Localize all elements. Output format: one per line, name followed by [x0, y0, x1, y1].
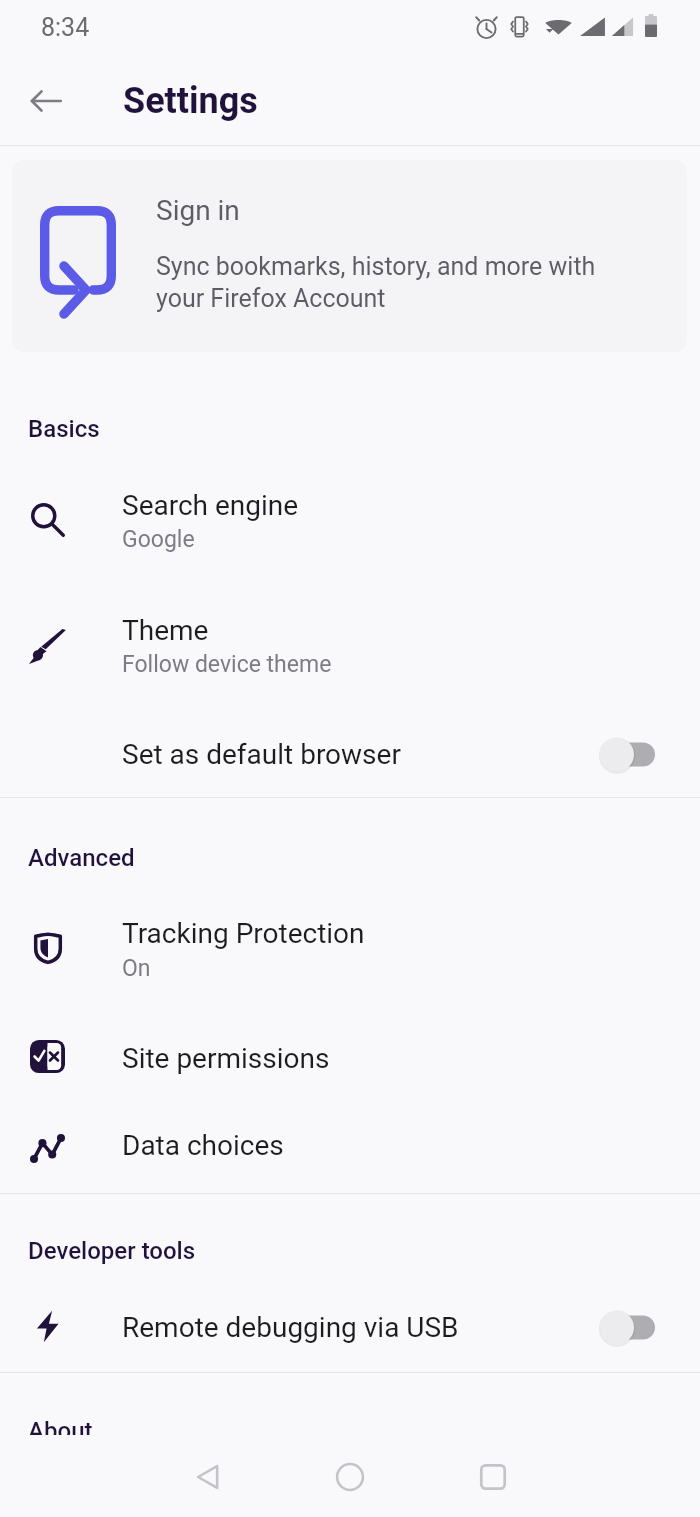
- staticText: Sync bookmarks, history, and more with y…: [156, 252, 596, 313]
- staticText: Settings: [123, 80, 258, 122]
- button[interactable]: Search engine: [0, 489, 700, 553]
- staticText: Follow device theme: [122, 651, 332, 678]
- button[interactable]: Data choices: [0, 1129, 700, 1162]
- staticText: Basics: [28, 415, 100, 443]
- button[interactable]: Back: [180, 1448, 237, 1505]
- staticText: Tracking Protection: [122, 917, 365, 950]
- staticText: Developer tools: [28, 1237, 196, 1265]
- staticText: 8:34: [41, 13, 90, 42]
- button[interactable]: Tracking Protection: [0, 917, 700, 982]
- staticText: Sign in: [156, 194, 240, 227]
- staticText: Advanced: [28, 844, 135, 872]
- button[interactable]: Site permissions: [0, 1042, 700, 1075]
- staticText: About: [28, 1417, 93, 1435]
- staticText: Remote debugging via USB: [122, 1311, 459, 1344]
- button[interactable]: Remote debugging via USB: [0, 1311, 700, 1344]
- button[interactable]: Recent apps: [464, 1448, 521, 1505]
- staticText: Search engine: [122, 489, 299, 522]
- staticText: Google: [122, 526, 195, 553]
- button[interactable]: Navigate up: [14, 69, 78, 133]
- staticText: Set as default browser: [122, 738, 401, 771]
- staticText: On: [122, 955, 151, 982]
- staticText: Site permissions: [122, 1042, 330, 1075]
- button[interactable]: Theme: [0, 614, 700, 678]
- button[interactable]: Home: [321, 1448, 378, 1505]
- staticText: Data choices: [122, 1129, 284, 1162]
- button[interactable]: Set as default browser: [0, 738, 700, 771]
- button[interactable]: Sign in: [12, 160, 687, 352]
- button[interactable]: Toggle: [600, 738, 655, 771]
- staticText: Theme: [122, 614, 209, 647]
- button[interactable]: Toggle: [600, 1311, 655, 1344]
